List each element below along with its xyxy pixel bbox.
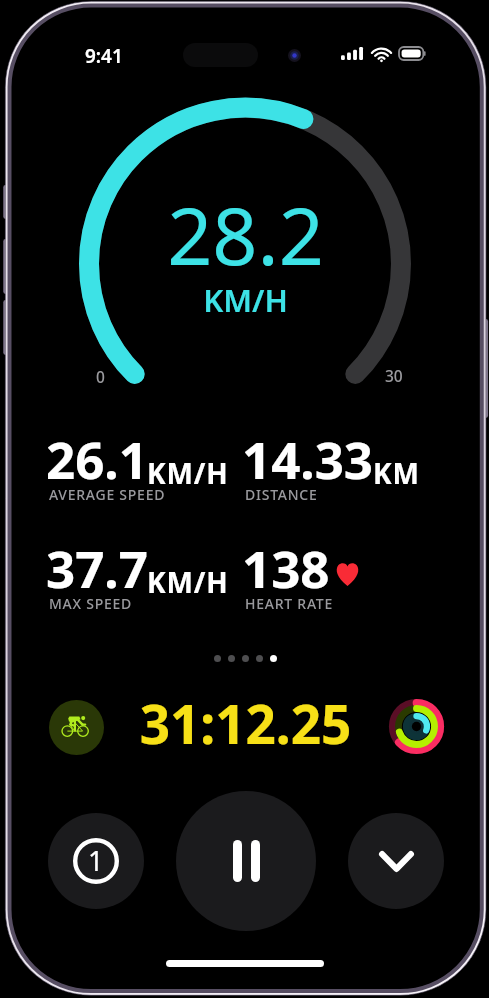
staticText: 1 (88, 842, 104, 879)
staticText: 28.2 (12, 181, 479, 289)
staticText: 37.7 (46, 533, 148, 602)
staticText: 14.33 (242, 424, 374, 493)
button[interactable]: Pause (176, 791, 316, 931)
button[interactable]: Lap (48, 813, 144, 909)
staticText: 138 (242, 533, 330, 602)
staticText: KM/H (147, 454, 229, 492)
staticText: 31:12.25 (12, 687, 479, 759)
staticText: 26.1 (46, 424, 148, 493)
staticText: KM/H (12, 279, 479, 321)
staticText: DISTANCE (245, 485, 318, 504)
button[interactable]: More options (348, 813, 444, 909)
staticText: AVERAGE SPEED (49, 485, 166, 504)
button[interactable]: Activity rings (389, 699, 444, 754)
staticText: KM/H (147, 563, 229, 601)
staticText: 9:41 (85, 43, 123, 69)
staticText: MAX SPEED (49, 594, 133, 613)
staticText: HEART RATE (245, 594, 333, 613)
button[interactable]: Cycling activity (49, 700, 104, 755)
staticText: KM (373, 454, 420, 492)
staticText: 30 (385, 365, 403, 386)
staticText: 0 (96, 366, 105, 387)
